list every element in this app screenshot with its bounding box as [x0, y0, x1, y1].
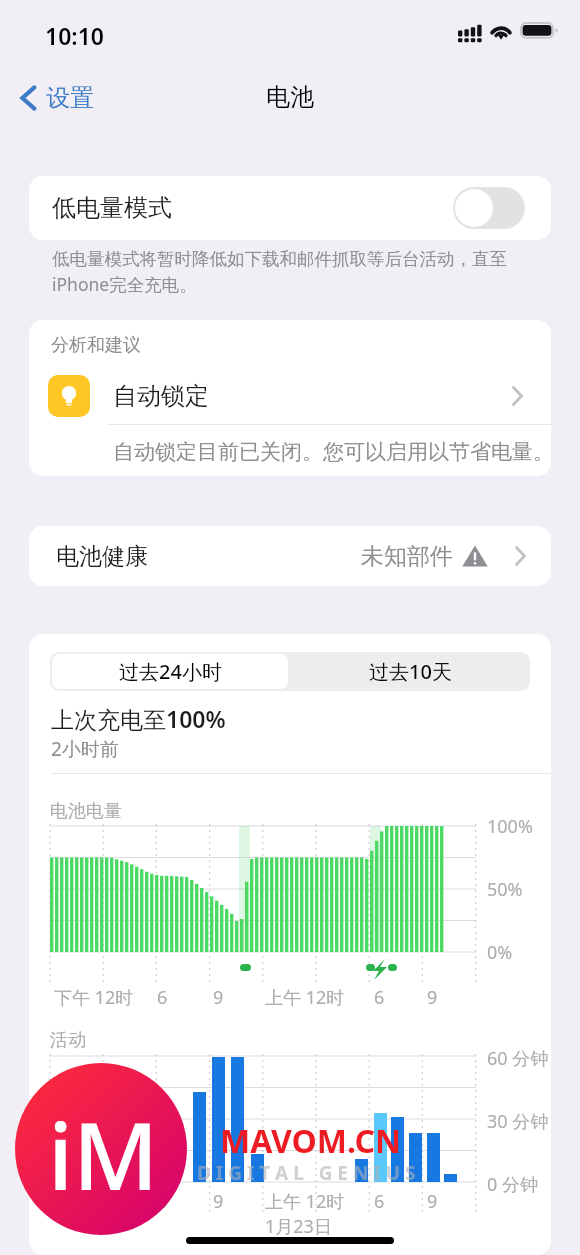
- staticText: 设置: [46, 83, 94, 113]
- staticText: 30 分钟: [487, 1109, 549, 1134]
- staticText: MAVOM.CN: [220, 1119, 401, 1163]
- button[interactable]: 低电量模式开关: [453, 187, 525, 229]
- button[interactable]: 过去10天: [290, 652, 530, 691]
- staticText: iPhone完全充电。: [52, 272, 197, 296]
- staticText: 电池: [266, 82, 314, 112]
- staticText: 6: [157, 985, 168, 1010]
- staticText: 过去24小时: [119, 658, 222, 685]
- staticText: D I G I T A L G E N I U S: [197, 1160, 416, 1186]
- staticText: 100%: [487, 814, 533, 839]
- staticText: 50%: [487, 877, 523, 902]
- button[interactable]: 过去24小时: [52, 654, 288, 689]
- staticText: 电池电量: [50, 800, 122, 823]
- staticText: 未知部件: [361, 542, 453, 571]
- staticText: 自动锁定: [113, 381, 209, 411]
- staticText: 60 分钟: [487, 1046, 549, 1071]
- staticText: 6: [374, 1189, 385, 1214]
- staticText: 6: [157, 1189, 168, 1214]
- staticText: 9: [213, 985, 224, 1010]
- button[interactable]: 设置: [18, 78, 94, 118]
- staticText: 1月23日: [265, 1214, 332, 1239]
- staticText: 2小时前: [51, 736, 119, 762]
- staticText: 上午 12时: [265, 985, 345, 1010]
- staticText: 9: [213, 1189, 224, 1214]
- staticText: 0 分钟: [487, 1172, 538, 1197]
- staticText: 分析和建议: [51, 334, 141, 357]
- staticText: 活动: [50, 1029, 86, 1052]
- staticText: 自动锁定目前已关闭。您可以启用以节省电量。: [113, 439, 551, 465]
- staticText: 低电量模式将暂时降低如下载和邮件抓取等后台活动，直至: [52, 248, 507, 270]
- staticText: 10:10: [45, 20, 104, 51]
- staticText: 上午 12时: [265, 1189, 345, 1214]
- staticText: 9: [427, 985, 438, 1010]
- staticText: 9: [427, 1189, 438, 1214]
- staticText: 下午 12时: [54, 1189, 134, 1214]
- staticText: 0%: [487, 940, 513, 965]
- staticText: 上次充电至100%: [51, 703, 226, 734]
- staticText: 下午 12时: [54, 985, 134, 1010]
- staticText: 低电量模式: [52, 193, 172, 223]
- staticText: 电池健康: [56, 542, 148, 571]
- staticText: iM: [48, 1091, 159, 1218]
- staticText: 6: [374, 985, 385, 1010]
- staticText: 过去10天: [369, 658, 452, 685]
